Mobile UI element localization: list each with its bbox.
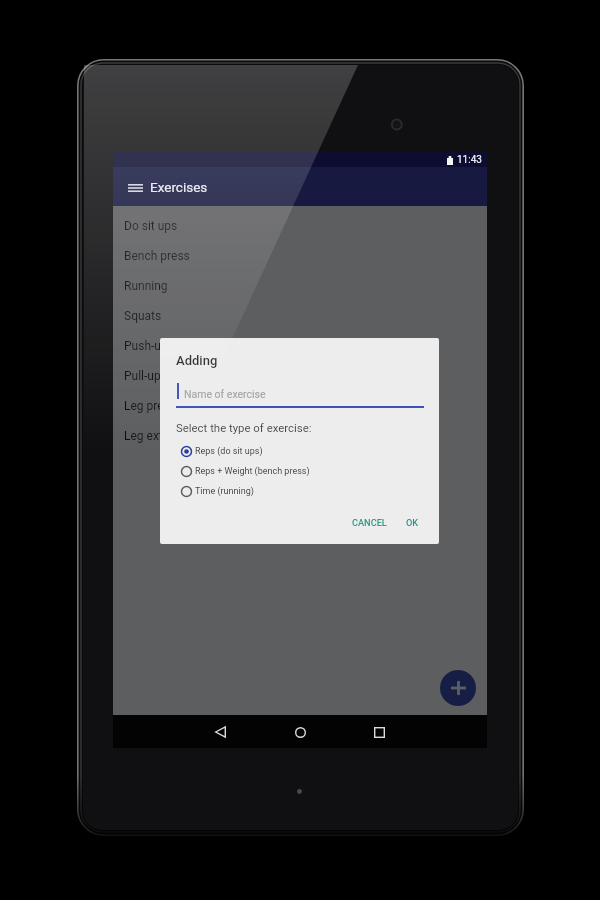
button[interactable]: Leg extension	[113, 421, 487, 451]
staticText: Reps (do sit ups)	[195, 446, 263, 457]
staticText: Reps + Weight (bench press)	[195, 466, 310, 477]
staticText: Leg press	[124, 399, 176, 413]
staticText: Push-ups	[124, 339, 174, 353]
staticText: Do sit ups	[124, 219, 178, 233]
button[interactable]: Reps (do sit ups)	[174, 442, 424, 461]
staticText: Bench press	[124, 249, 190, 263]
button[interactable]: OK	[398, 510, 427, 535]
staticText: Adding	[176, 353, 218, 368]
button[interactable]: Leg press	[113, 391, 487, 421]
staticText: Squats	[124, 309, 162, 323]
button[interactable]: Running	[113, 271, 487, 301]
button[interactable]: CANCEL	[344, 510, 395, 535]
button[interactable]: Squats	[113, 301, 487, 331]
button[interactable]: Add exercise	[440, 670, 476, 706]
staticText: 11:43	[457, 154, 482, 166]
button[interactable]: Pull-ups	[113, 361, 487, 391]
staticText: Running	[124, 279, 168, 293]
staticText: Name of exercise	[184, 388, 266, 400]
button[interactable]: Time (running)	[174, 482, 424, 501]
button[interactable]: Back	[205, 717, 235, 747]
button[interactable]: Open navigation drawer	[113, 167, 157, 206]
staticText: Time (running)	[195, 486, 254, 497]
button[interactable]: Do sit ups	[113, 211, 487, 241]
staticText: Pull-ups	[124, 369, 167, 383]
button[interactable]: Recent apps	[364, 717, 394, 747]
button[interactable]: Push-ups	[113, 331, 487, 361]
staticText: Leg extension	[124, 429, 199, 443]
button[interactable]: Reps + Weight (bench press)	[174, 462, 424, 481]
button[interactable]: Home	[285, 717, 315, 747]
staticText: Select the type of exercise:	[176, 421, 312, 434]
staticText: Exercises	[150, 179, 208, 195]
button[interactable]: Bench press	[113, 241, 487, 271]
